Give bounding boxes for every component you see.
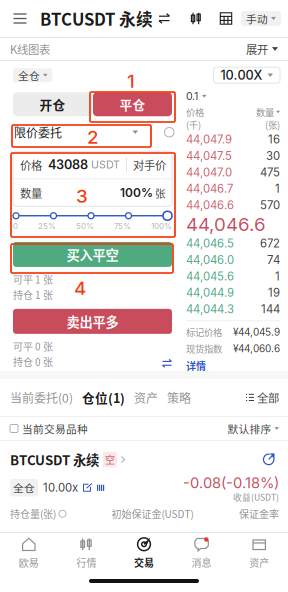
button[interactable]: 开仓 <box>13 92 92 116</box>
staticText: 展开 <box>246 41 268 57</box>
staticText: 1 <box>275 182 280 195</box>
staticText: 43088 <box>48 157 88 172</box>
button[interactable]: 详情 <box>180 355 206 373</box>
button[interactable]: 欧易 <box>0 533 58 573</box>
staticText: (千) <box>186 118 201 131</box>
button[interactable]: 44,046.7 <box>180 180 288 197</box>
staticText: K线图表 <box>10 41 50 57</box>
button[interactable]: BTCUSDT 永续 <box>40 0 170 37</box>
staticText: 数量 <box>256 105 274 119</box>
staticText: 欧易 <box>19 555 39 570</box>
button[interactable]: 44,047.0 <box>180 164 288 180</box>
button[interactable]: 平仓 <box>93 92 172 116</box>
staticText: 44,046.5 <box>186 237 234 250</box>
button[interactable]: K线图表 <box>0 38 288 60</box>
staticText: 策略 <box>167 389 191 406</box>
staticText: 当前交易品种 <box>22 421 88 436</box>
button[interactable]: 策略 <box>167 379 191 416</box>
staticText: 价格 <box>20 156 42 173</box>
staticText: 初始保证金(USDT) <box>111 506 193 521</box>
staticText: 44,046.0 <box>186 253 234 267</box>
button[interactable]: 资产 <box>134 379 167 416</box>
staticText: 10.00x <box>43 481 78 495</box>
button[interactable]: 当前委托(0) <box>10 379 82 416</box>
button[interactable]: 10.00X <box>213 67 280 83</box>
staticText: BTCUSDT 永续 <box>10 450 99 469</box>
staticText: 手动 <box>246 11 268 26</box>
staticText: 全部 <box>257 389 279 406</box>
staticText: 空 <box>105 452 115 467</box>
staticText: 平仓 <box>119 95 145 113</box>
button[interactable]: 仓位(1) <box>82 379 134 416</box>
button[interactable]: BTCUSDT 永续 <box>10 445 125 474</box>
button[interactable]: 手动 <box>241 11 281 26</box>
button[interactable]: Candlestick chart <box>181 0 211 37</box>
button[interactable]: 44,046.5 <box>180 235 288 252</box>
staticText: 44,046.7 <box>186 182 233 195</box>
staticText: 25% <box>38 221 56 231</box>
staticText: 持仓 1 张 <box>13 287 53 302</box>
staticText: 0.1 <box>186 90 198 103</box>
staticText: 100% <box>151 221 172 231</box>
staticText: 1 <box>127 70 135 92</box>
staticText: 收益(USDT) <box>233 491 279 503</box>
staticText: 3 <box>76 185 88 207</box>
staticText: 44,045.6 <box>186 269 234 283</box>
button[interactable]: 44,045.6 <box>180 268 288 284</box>
staticText: 数量 <box>20 184 42 201</box>
button[interactable]: 0.1 <box>186 89 206 103</box>
staticText: 1 <box>275 269 280 283</box>
staticText: 当前委托(0) <box>10 389 73 406</box>
button[interactable]: 资产 <box>230 533 288 573</box>
button[interactable]: 44,044.9 <box>180 284 288 301</box>
staticText: 44,047.0 <box>186 165 232 179</box>
staticText: 标记价格 <box>186 325 222 339</box>
staticText: 44,047.9 <box>186 133 232 146</box>
staticText: 74 <box>267 253 280 267</box>
button[interactable]: Menu <box>0 0 40 37</box>
button[interactable]: 行情 <box>58 533 115 573</box>
button[interactable]: 默认排序 <box>227 417 279 440</box>
button[interactable]: 当前交易品种 <box>10 417 88 440</box>
staticText: 44,047.5 <box>186 149 232 163</box>
staticText: 44,044.3 <box>186 302 234 316</box>
button[interactable]: 44,046.0 <box>180 252 288 268</box>
staticText: 44,046.6 <box>186 213 266 236</box>
staticText: 可平 0 张 <box>13 339 53 353</box>
staticText: 详情 <box>186 358 206 373</box>
staticText: 买入平空 <box>66 245 118 264</box>
staticText: 全仓 <box>18 67 40 83</box>
button[interactable]: 消息 <box>173 533 230 573</box>
staticText: 持仓 0 张 <box>13 354 53 369</box>
button[interactable]: 44,046.6 <box>180 197 288 213</box>
button[interactable]: 44,044.3 <box>180 301 288 317</box>
button[interactable]: 44,047.5 <box>180 148 288 164</box>
button[interactable]: 交易 <box>115 533 173 573</box>
staticText: 现货指数 <box>186 342 222 355</box>
button[interactable]: 全部 <box>246 379 279 416</box>
button[interactable]: 买入平空 <box>13 242 172 267</box>
staticText: 50% <box>76 221 94 231</box>
staticText: 仓位(1) <box>82 388 125 407</box>
button[interactable]: Layout <box>211 0 241 37</box>
staticText: 价格 <box>186 105 204 119</box>
staticText: 100% <box>120 185 153 200</box>
staticText: 44,044.9 <box>186 286 234 299</box>
staticText: 资产 <box>134 389 158 406</box>
staticText: USDT <box>88 158 120 171</box>
staticText: 475 <box>260 165 280 179</box>
staticText: 消息 <box>192 555 212 570</box>
button[interactable]: Refresh <box>259 445 279 474</box>
staticText: 资产 <box>249 555 269 570</box>
staticText: 持仓量(张) <box>10 506 56 521</box>
staticText: 可平 1 张 <box>13 272 53 286</box>
button[interactable]: 卖出平多 <box>13 309 172 334</box>
button[interactable]: 44,047.9 <box>180 131 288 148</box>
button[interactable]: 全仓 <box>13 68 52 82</box>
button[interactable]: 限价委托 <box>14 122 138 142</box>
staticText: ¥44,045.9 <box>233 326 280 338</box>
staticText: 限价委托 <box>14 123 62 141</box>
staticText: 144 <box>261 302 280 316</box>
staticText: ¥44,060.6 <box>233 342 280 355</box>
staticText: (张) <box>265 118 280 131</box>
